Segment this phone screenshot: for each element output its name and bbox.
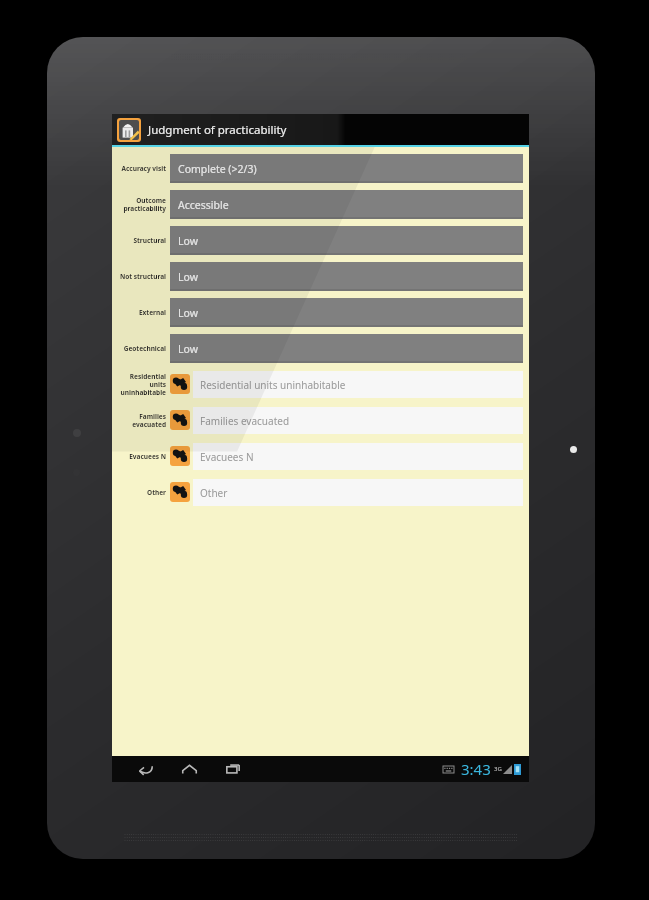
staticText: Accessible — [178, 198, 229, 212]
staticText: Other — [200, 486, 228, 500]
button[interactable]: Home — [172, 756, 206, 782]
button[interactable]: Outcome practicability — [112, 186, 529, 222]
button[interactable]: Accuracy visit — [112, 150, 529, 186]
staticText: 3:43 — [461, 759, 491, 779]
staticText: Other — [147, 488, 166, 497]
staticText: External — [138, 308, 166, 317]
staticText: Geotechnical — [123, 344, 166, 353]
button[interactable]: Families evacuated — [112, 402, 529, 438]
button[interactable]: Residential units uninhabitable — [112, 366, 529, 402]
staticText: Structural — [133, 236, 166, 245]
button[interactable]: Pick value — [170, 482, 190, 502]
button[interactable]: App icon — [112, 114, 287, 145]
button[interactable]: Other — [112, 474, 529, 510]
other: App icon — [119, 120, 139, 140]
staticText: 3G — [494, 765, 502, 773]
staticText: Low — [178, 306, 198, 320]
staticText: Complete (>2/3) — [178, 162, 257, 176]
staticText: Judgment of practicability — [148, 122, 287, 138]
button[interactable]: Pick value — [170, 410, 190, 430]
button[interactable]: Geotechnical — [112, 330, 529, 366]
staticText: Low — [178, 234, 198, 248]
button[interactable]: Recent apps — [216, 756, 250, 782]
button[interactable]: Not structural — [112, 258, 529, 294]
staticText: Evacuees N — [129, 452, 166, 461]
staticText: Not structural — [119, 272, 166, 281]
staticText: Families evacuated — [200, 414, 290, 428]
staticText: Outcome practicability — [123, 196, 166, 213]
button[interactable]: Evacuees N — [112, 438, 529, 474]
button[interactable]: 3:43 — [443, 756, 529, 782]
button[interactable]: Pick value — [170, 374, 190, 394]
button[interactable]: Back — [128, 756, 162, 782]
staticText: Low — [178, 342, 198, 356]
staticText: Residential units uninhabitable — [120, 372, 166, 397]
button[interactable]: External — [112, 294, 529, 330]
staticText: Accuracy visit — [121, 164, 166, 173]
staticText: Residential units uninhabitable — [200, 378, 346, 392]
staticText: Low — [178, 270, 198, 284]
button[interactable]: Pick value — [170, 446, 190, 466]
staticText: Families evacuated — [132, 412, 166, 429]
staticText: Evacuees N — [200, 450, 254, 464]
button[interactable]: Structural — [112, 222, 529, 258]
